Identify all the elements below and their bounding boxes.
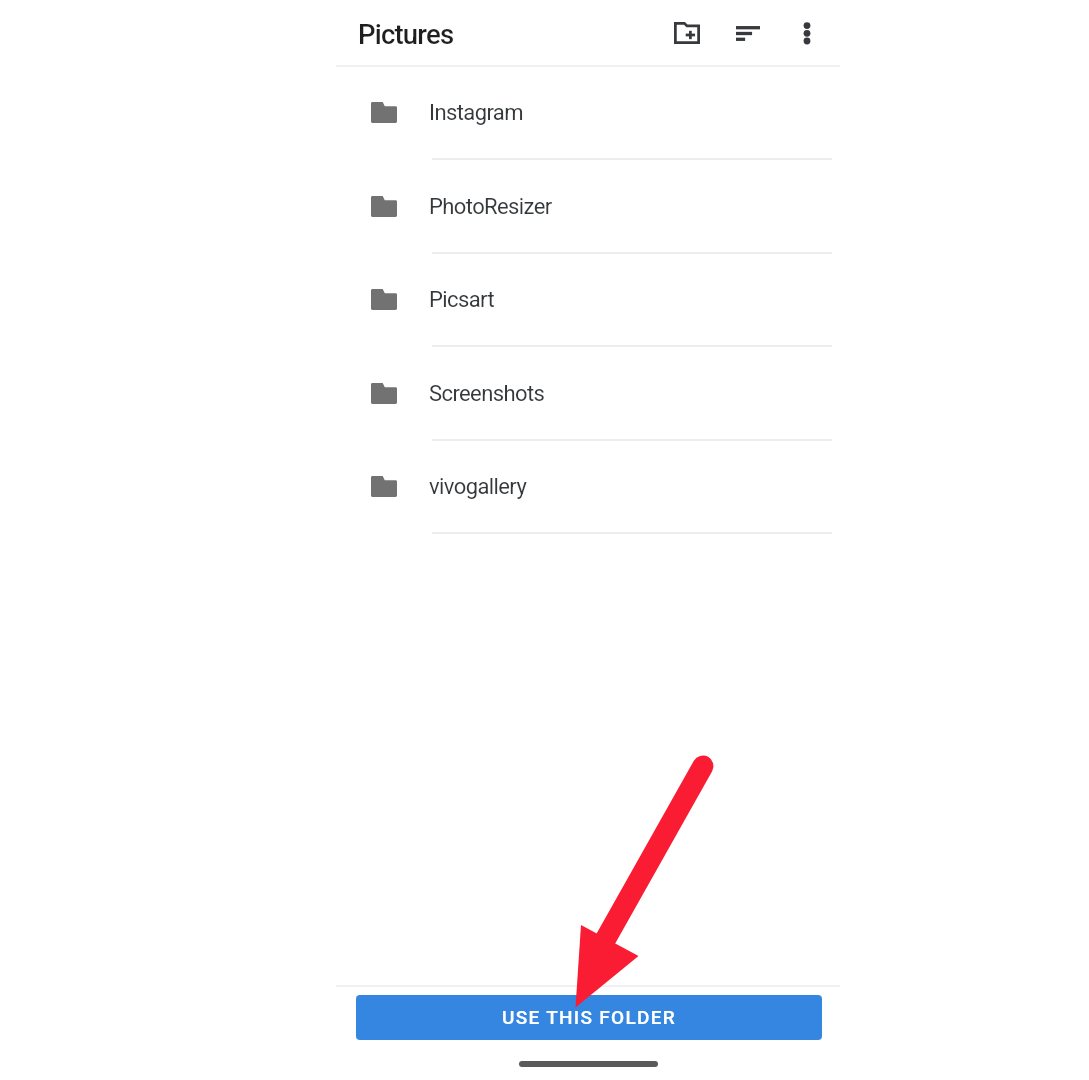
button[interactable]: vivogallery <box>336 439 840 533</box>
staticText: Picsart <box>429 287 495 313</box>
staticText: USE THIS FOLDER <box>502 1006 677 1028</box>
staticText: Screenshots <box>429 381 545 407</box>
staticText: vivogallery <box>429 474 527 500</box>
button[interactable]: Instagram <box>336 65 840 159</box>
staticText: Instagram <box>429 100 523 126</box>
button[interactable]: USE THIS FOLDER <box>356 995 822 1040</box>
button[interactable]: Create new folder <box>665 11 709 55</box>
button[interactable]: PhotoResizer <box>336 159 840 253</box>
staticText: Pictures <box>358 18 454 50</box>
button[interactable]: Screenshots <box>336 346 840 440</box>
button[interactable]: Picsart <box>336 252 840 346</box>
staticText: PhotoResizer <box>429 194 552 220</box>
button[interactable]: Sort <box>726 11 770 55</box>
button[interactable]: More options <box>785 11 829 55</box>
